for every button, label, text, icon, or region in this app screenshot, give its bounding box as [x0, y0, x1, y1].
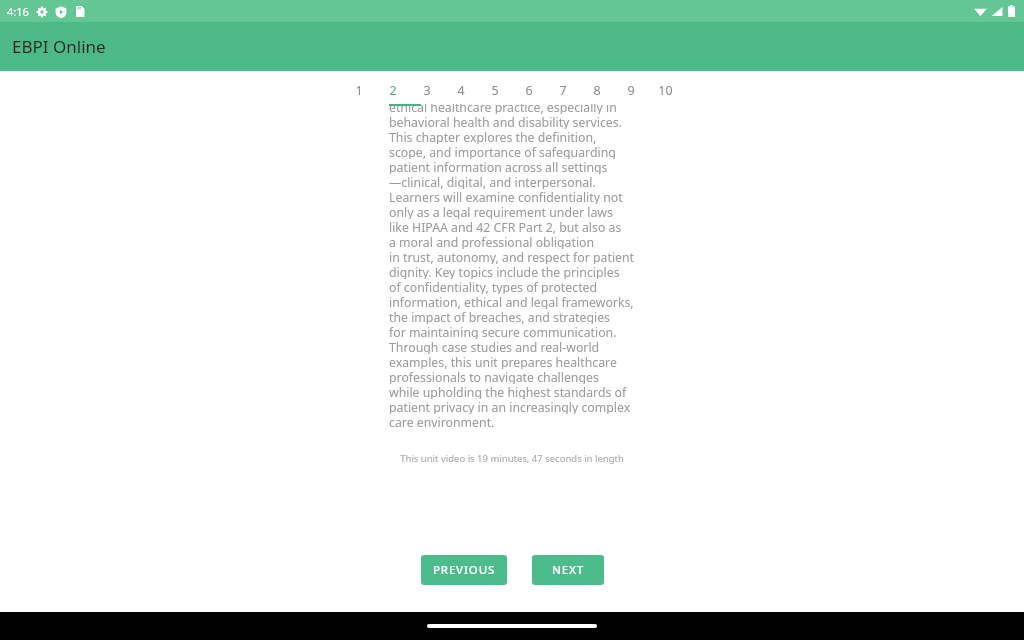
staticText: 3	[423, 82, 431, 99]
staticText: NEXT	[552, 562, 585, 578]
staticText: scope, and importance of safeguarding	[389, 144, 616, 159]
staticText: 1	[355, 82, 363, 99]
staticText: the impact of breaches, and strategies	[389, 309, 611, 324]
button[interactable]: 6	[512, 81, 546, 99]
button[interactable]: 4	[444, 81, 478, 99]
staticText: 9	[627, 82, 635, 99]
staticText: EBPI Online	[12, 35, 106, 58]
staticText: 5	[491, 82, 499, 99]
staticText: dignity. Key topics include the principl…	[389, 264, 620, 279]
staticText: like HIPAA and 42 CFR Part 2, but also a…	[389, 219, 622, 234]
staticText: examples, this unit prepares healthcare	[389, 354, 617, 369]
staticText: 4:16	[7, 4, 29, 19]
staticText: ethical healthcare practice, especially …	[389, 104, 617, 114]
staticText: care environment.	[389, 414, 495, 429]
staticText: This unit video is 19 minutes, 47 second…	[400, 452, 624, 465]
staticText: 4	[457, 82, 465, 99]
staticText: only as a legal requirement under laws	[389, 204, 613, 219]
button[interactable]: 10	[648, 81, 682, 99]
staticText: in trust, autonomy, and respect for pati…	[389, 249, 635, 264]
button[interactable]: 9	[614, 81, 648, 99]
button[interactable]: 1	[342, 81, 376, 99]
button[interactable]: 3	[410, 81, 444, 99]
staticText: 8	[593, 82, 601, 99]
button[interactable]: NEXT	[532, 555, 604, 585]
staticText: 6	[525, 82, 533, 99]
staticText: PREVIOUS	[433, 562, 496, 578]
staticText: of confidentiality, types of protected	[389, 279, 598, 294]
staticText: Learners will examine confidentiality no…	[389, 189, 623, 204]
staticText: information, ethical and legal framework…	[389, 294, 634, 309]
staticText: a moral and professional obligation root…	[389, 234, 635, 249]
button[interactable]: 2	[376, 81, 410, 99]
button[interactable]: PREVIOUS	[421, 555, 507, 585]
staticText: while upholding the highest standards of	[389, 384, 627, 399]
staticText: —clinical, digital, and interpersonal.	[389, 174, 596, 189]
staticText: This chapter explores the definition,	[389, 129, 597, 144]
button[interactable]: Home gesture	[427, 624, 597, 628]
staticText: Through case studies and real-world	[389, 339, 600, 354]
staticText: professionals to navigate challenges	[389, 369, 599, 384]
staticText: behavioral health and disability service…	[389, 114, 622, 129]
button[interactable]: 8	[580, 81, 614, 99]
staticText: 2	[389, 82, 397, 99]
button[interactable]: 7	[546, 81, 580, 99]
button[interactable]: 5	[478, 81, 512, 99]
staticText: 10	[658, 82, 673, 99]
staticText: 7	[559, 82, 567, 99]
staticText: patient information across all settings	[389, 159, 608, 174]
staticText: patient privacy in an increasingly compl…	[389, 399, 631, 414]
staticText: for maintaining secure communication.	[389, 324, 617, 339]
